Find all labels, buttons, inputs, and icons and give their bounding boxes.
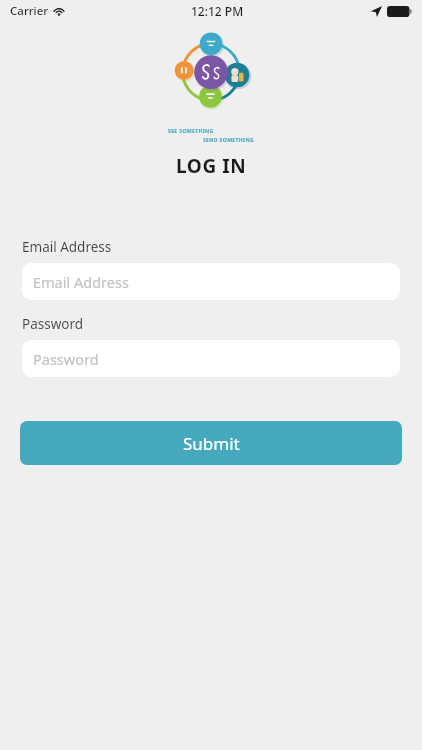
staticText: LOG IN <box>176 153 247 179</box>
staticText: SEND SOMETHING <box>168 136 254 143</box>
staticText: 12:12 PM <box>191 3 244 19</box>
button[interactable]: Password <box>22 340 400 377</box>
staticText: Email Address <box>22 238 112 256</box>
staticText: Submit <box>183 432 240 455</box>
staticText: Email Address <box>33 272 129 292</box>
staticText: SEE SOMETHING <box>168 127 214 134</box>
staticText: Password <box>33 349 99 369</box>
staticText: Carrier <box>10 3 49 19</box>
button[interactable]: Submit <box>20 421 402 465</box>
staticText: Password <box>22 315 84 333</box>
button[interactable]: Email Address <box>22 263 400 300</box>
